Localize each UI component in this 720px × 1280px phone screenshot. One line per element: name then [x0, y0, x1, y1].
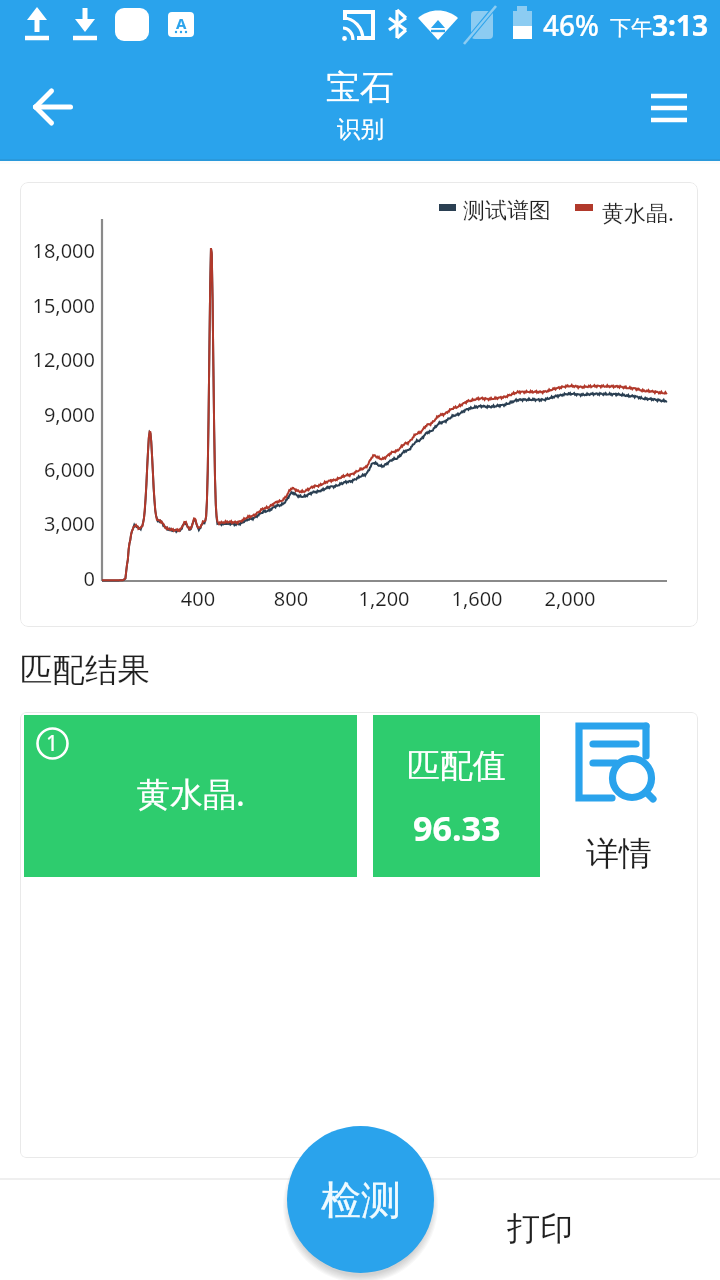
staticText: 2,000 [520, 585, 620, 612]
button[interactable]: Measure [0, 1178, 360, 1280]
staticText: 1,200 [334, 585, 434, 612]
staticText: A [176, 13, 187, 33]
staticText: 1 [46, 729, 59, 758]
staticText: 黄水晶. [602, 197, 674, 227]
staticText: 15,000 [22, 292, 95, 319]
staticText: 96.33 [413, 805, 501, 851]
staticText: 46% [543, 6, 599, 44]
button[interactable]: 黄水晶. [24, 715, 357, 877]
staticText: 检测 [321, 1175, 401, 1225]
staticText: 下午 [610, 15, 652, 41]
button[interactable]: 匹配值 [373, 715, 540, 877]
button[interactable]: Menu [634, 73, 704, 143]
staticText: 匹配值 [407, 745, 506, 787]
staticText: 黄水晶. [137, 771, 245, 816]
staticText: 打印 [507, 1208, 573, 1250]
button[interactable]: 详情 [540, 715, 694, 877]
staticText: 匹配结果 [20, 650, 150, 691]
staticText: 测试谱图 [463, 197, 551, 225]
button[interactable]: Back [20, 74, 86, 140]
staticText: 宝石 [326, 66, 394, 109]
staticText: 18,000 [22, 237, 95, 264]
staticText: 详情 [586, 833, 652, 875]
staticText: 6,000 [22, 456, 95, 483]
staticText: 9,000 [22, 401, 95, 428]
staticText: 400 [148, 585, 248, 612]
button[interactable]: 打印 [360, 1178, 720, 1280]
staticText: 3,000 [22, 510, 95, 537]
staticText: 800 [241, 585, 341, 612]
staticText: 识别 [337, 114, 384, 144]
staticText: 0 [22, 565, 95, 592]
staticText: 3:13 [652, 6, 708, 44]
staticText: 12,000 [22, 346, 95, 373]
button[interactable]: 检测 [287, 1126, 434, 1273]
staticText: 1,600 [427, 585, 527, 612]
